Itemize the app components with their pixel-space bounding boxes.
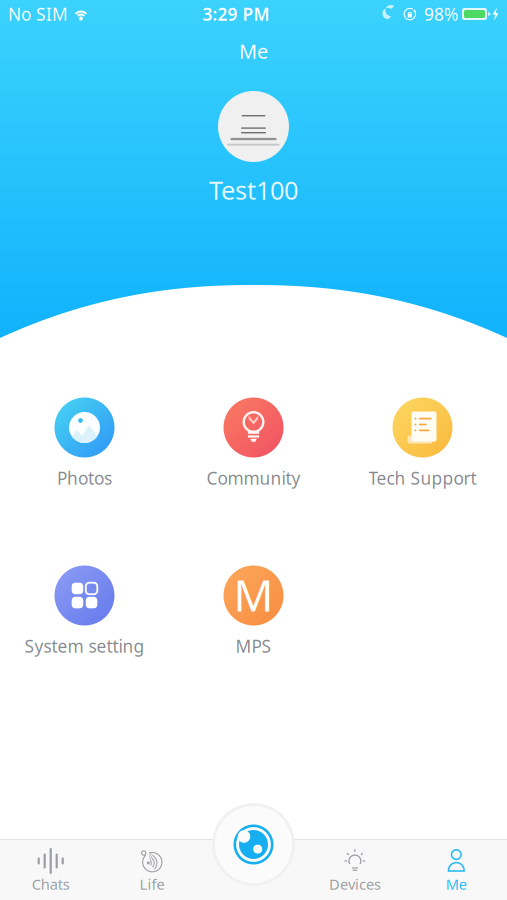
button[interactable]: Chats xyxy=(0,839,101,900)
staticText: Devices xyxy=(329,874,381,894)
button[interactable]: Tech Support xyxy=(338,401,507,492)
staticText: Chats xyxy=(32,874,70,894)
button[interactable]: Community xyxy=(169,401,338,492)
staticText: Test100 xyxy=(209,173,298,207)
staticText: Photos xyxy=(57,466,112,489)
staticText: M xyxy=(233,565,273,624)
staticText: 98% xyxy=(424,2,458,25)
button[interactable]: Photos xyxy=(0,401,169,492)
staticText: Community xyxy=(206,466,300,489)
button[interactable]: Me xyxy=(406,839,507,900)
button[interactable]: Scan xyxy=(212,803,295,886)
button[interactable]: Devices xyxy=(304,839,406,900)
staticText: System setting xyxy=(24,634,144,657)
staticText: No SIM xyxy=(8,2,68,25)
staticText: Me xyxy=(446,874,467,894)
staticText: MPS xyxy=(235,634,271,657)
staticText: Life xyxy=(140,874,165,894)
button[interactable]: System setting xyxy=(0,569,169,660)
staticText: Me xyxy=(239,38,268,64)
staticText: 3:29 PM xyxy=(202,2,269,25)
button[interactable]: Life xyxy=(101,839,203,900)
button[interactable]: M xyxy=(169,569,338,660)
staticText: Tech Support xyxy=(368,466,476,489)
